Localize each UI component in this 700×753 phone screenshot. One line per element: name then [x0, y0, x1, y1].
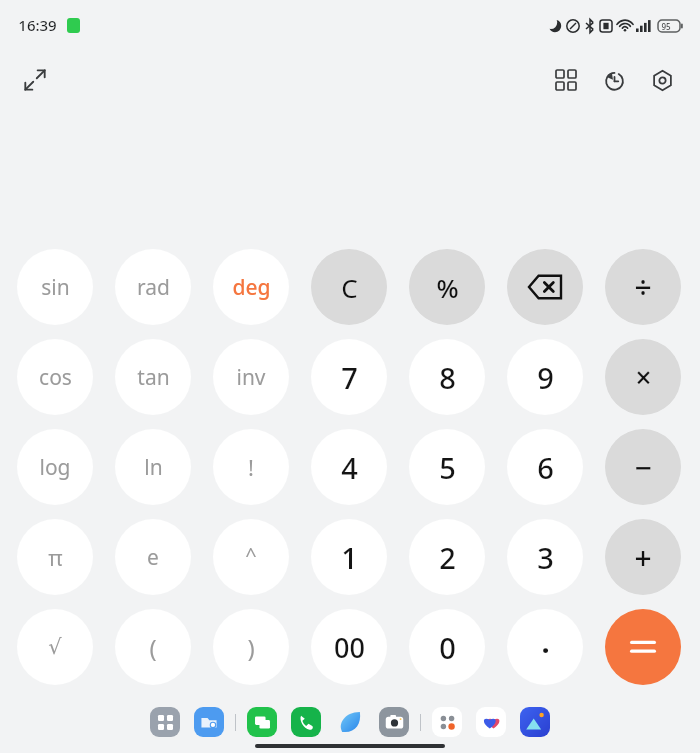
staticText: 7 — [341, 358, 358, 397]
button[interactable]: 2 — [409, 519, 485, 595]
button[interactable]: Collapse — [12, 57, 58, 103]
button[interactable]: √ — [17, 609, 93, 685]
button[interactable]: 1 — [311, 519, 387, 595]
staticText: sin — [41, 273, 70, 302]
staticText: 0 — [439, 628, 456, 667]
staticText: deg — [232, 273, 271, 302]
button[interactable]: Recents — [192, 705, 226, 739]
staticText: tan — [137, 363, 170, 392]
button[interactable]: ) — [213, 609, 289, 685]
staticText: log — [39, 453, 71, 482]
button[interactable]: 8 — [409, 339, 485, 415]
button[interactable]: App drawer — [148, 705, 182, 739]
button[interactable]: . — [507, 609, 583, 685]
button[interactable]: ^ — [213, 519, 289, 595]
button[interactable]: × — [605, 339, 681, 415]
button[interactable]: ln — [115, 429, 191, 505]
button[interactable]: ! — [213, 429, 289, 505]
staticText: ( — [149, 631, 157, 664]
button[interactable]: 3 — [507, 519, 583, 595]
button[interactable]: tan — [115, 339, 191, 415]
staticText: ) — [247, 631, 255, 664]
staticText: C — [341, 270, 358, 305]
staticText: ÷ — [634, 267, 652, 308]
button[interactable]: Backspace — [507, 249, 583, 325]
staticText: 1 — [341, 538, 358, 577]
button[interactable]: + — [605, 519, 681, 595]
button[interactable]: 7 — [311, 339, 387, 415]
button[interactable]: Settings — [638, 56, 686, 104]
button[interactable]: π — [17, 519, 93, 595]
staticText: 3 — [537, 538, 554, 577]
staticText: ! — [248, 452, 254, 482]
staticText: 8 — [439, 358, 456, 397]
button[interactable]: Phone — [289, 705, 323, 739]
button[interactable]: History — [590, 56, 638, 104]
staticText: + — [634, 537, 652, 578]
staticText: 16:39 — [18, 15, 57, 35]
button[interactable]: 4 — [311, 429, 387, 505]
button[interactable]: cos — [17, 339, 93, 415]
staticText: e — [147, 543, 159, 572]
staticText: 95 — [661, 21, 671, 32]
button[interactable]: ( — [115, 609, 191, 685]
button[interactable]: ÷ — [605, 249, 681, 325]
staticText: rad — [137, 273, 170, 302]
button[interactable]: 6 — [507, 429, 583, 505]
button[interactable]: Tools — [430, 705, 464, 739]
staticText: . — [541, 622, 550, 661]
button[interactable]: sin — [17, 249, 93, 325]
button[interactable]: % — [409, 249, 485, 325]
button[interactable]: log — [17, 429, 93, 505]
button[interactable]: e — [115, 519, 191, 595]
staticText: ln — [144, 453, 163, 482]
staticText: − — [634, 447, 652, 488]
button[interactable]: Browser — [333, 705, 367, 739]
button[interactable]: Layout — [542, 56, 590, 104]
button[interactable]: C — [311, 249, 387, 325]
button[interactable] — [605, 609, 681, 685]
staticText: 2 — [439, 538, 456, 577]
staticText: 4 — [341, 448, 358, 487]
staticText: π — [48, 542, 63, 572]
staticText: cos — [39, 363, 72, 392]
button[interactable]: rad — [115, 249, 191, 325]
button[interactable]: 9 — [507, 339, 583, 415]
staticText: 6 — [537, 448, 554, 487]
button[interactable]: Gallery — [518, 705, 552, 739]
staticText: 00 — [334, 629, 365, 666]
staticText: % — [436, 270, 459, 305]
staticText: ^ — [245, 541, 257, 568]
button[interactable]: − — [605, 429, 681, 505]
button[interactable]: Camera — [377, 705, 411, 739]
button[interactable]: deg — [213, 249, 289, 325]
button[interactable]: 0 — [409, 609, 485, 685]
button[interactable]: Health — [474, 705, 508, 739]
button[interactable]: Messages — [245, 705, 279, 739]
staticText: 9 — [537, 358, 554, 397]
staticText: inv — [236, 363, 266, 392]
staticText: × — [635, 358, 652, 396]
staticText: √ — [48, 635, 62, 659]
staticText: 5 — [439, 448, 456, 487]
button[interactable]: 5 — [409, 429, 485, 505]
button[interactable]: 00 — [311, 609, 387, 685]
button[interactable]: inv — [213, 339, 289, 415]
